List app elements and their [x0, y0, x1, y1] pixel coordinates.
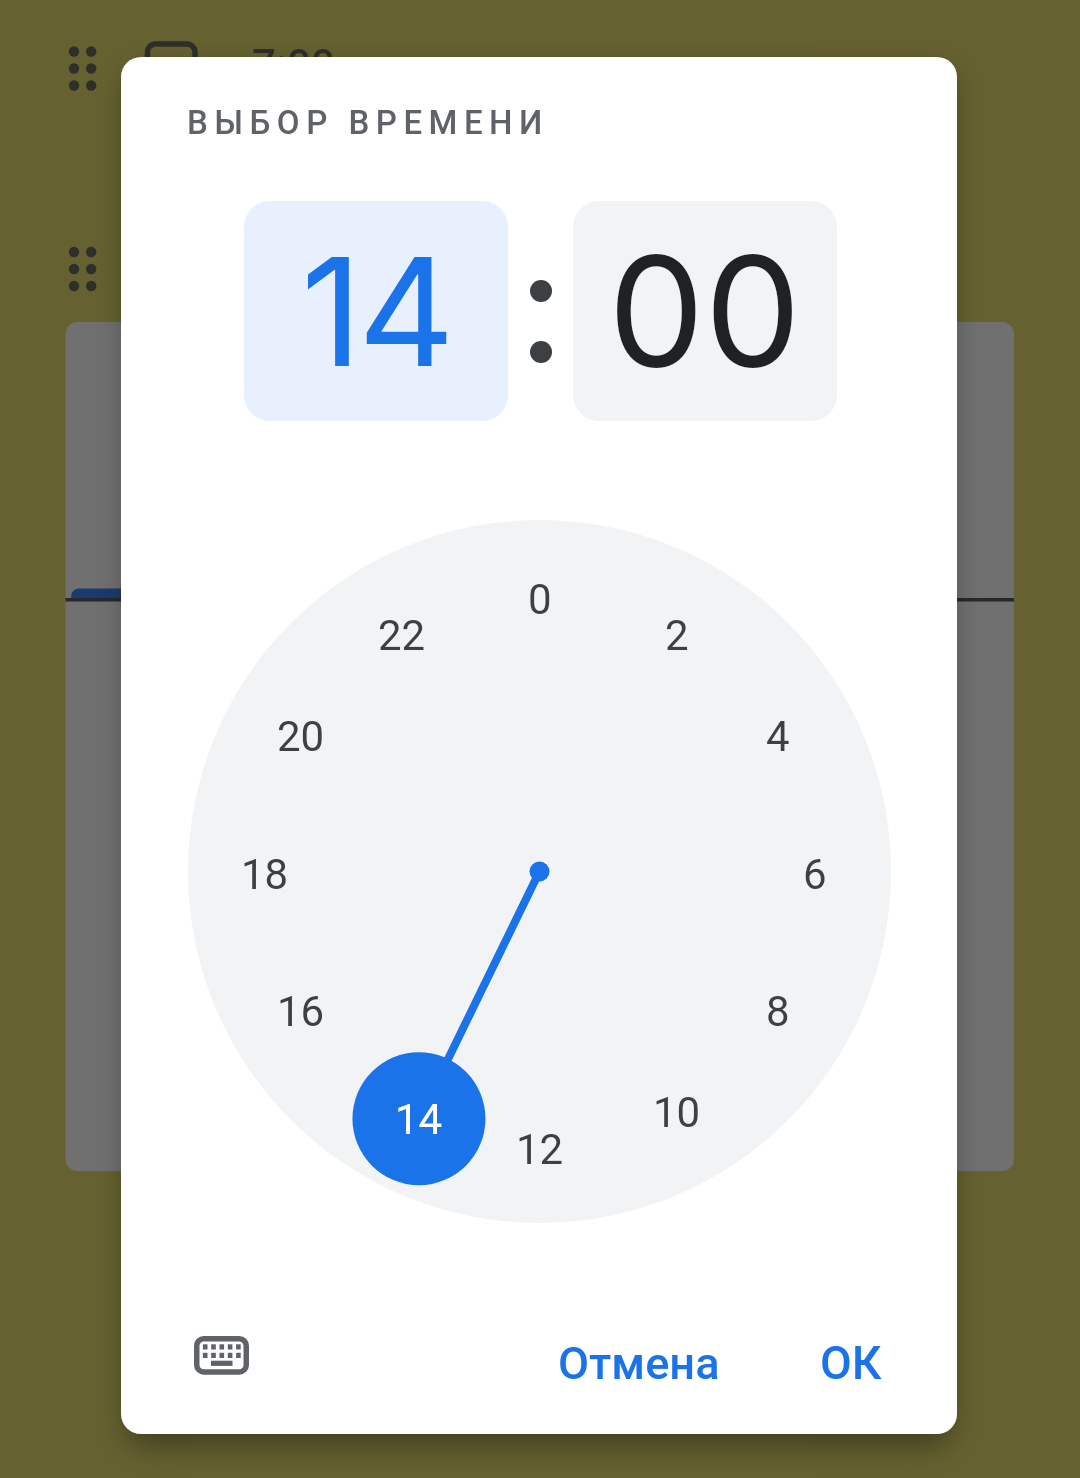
staticText: 2	[665, 611, 689, 660]
staticText: ОК	[820, 1336, 882, 1390]
staticText: 22	[378, 611, 426, 660]
staticText: 0	[528, 575, 552, 624]
staticText: 8	[766, 987, 790, 1036]
button[interactable]: 00	[573, 201, 837, 421]
staticText: 00	[608, 219, 802, 404]
staticText: Отмена	[558, 1337, 720, 1390]
staticText: 4	[766, 712, 790, 761]
button[interactable]	[179, 1319, 263, 1391]
staticText: 7:00	[252, 40, 335, 89]
button[interactable]: 14	[359, 1079, 479, 1159]
button[interactable]: 14	[244, 201, 508, 421]
staticText: ВЫБОР ВРЕМЕНИ	[187, 103, 549, 142]
staticText: 14	[395, 1095, 443, 1144]
staticText: 12	[516, 1125, 564, 1174]
staticText: 10	[653, 1088, 701, 1137]
staticText: 18	[241, 850, 289, 899]
staticText: 14	[301, 221, 451, 402]
button[interactable]: ОК	[791, 1332, 911, 1394]
button[interactable]: Отмена	[549, 1332, 729, 1394]
staticText: 20	[277, 712, 325, 761]
staticText: 16	[277, 987, 325, 1036]
staticText: 6	[803, 850, 827, 899]
